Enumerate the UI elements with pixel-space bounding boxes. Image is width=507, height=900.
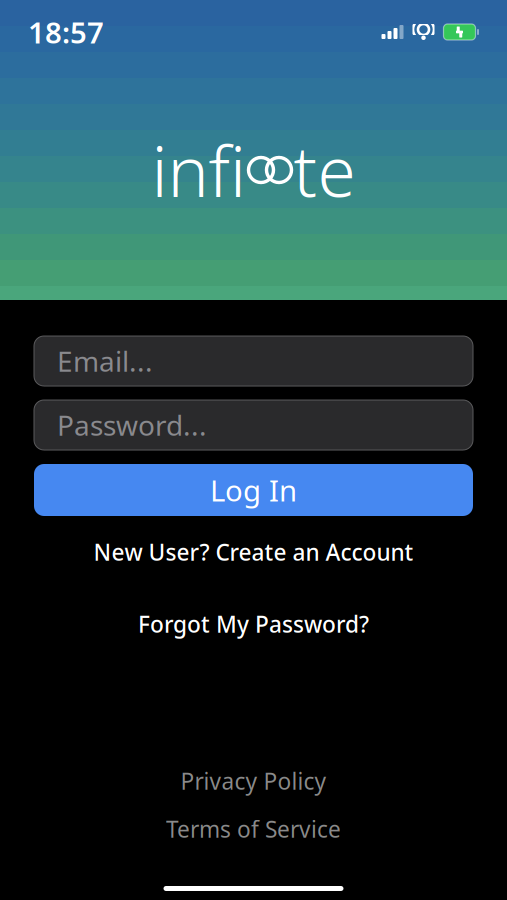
staticText: Email... [57, 342, 153, 380]
staticText: Forgot My Password? [138, 609, 369, 639]
button[interactable]: Terms of Service [34, 816, 473, 842]
button[interactable]: New User? Create an Account [34, 538, 473, 566]
staticText: New User? Create an Account [93, 537, 413, 567]
staticText: Privacy Policy [180, 766, 326, 796]
button[interactable]: Password... [34, 400, 473, 450]
staticText: te [293, 124, 355, 216]
button[interactable]: Email... [34, 336, 473, 386]
staticText: 18:57 [28, 12, 104, 51]
staticText: Terms of Service [166, 814, 341, 844]
staticText: infi [151, 124, 246, 216]
button[interactable]: Forgot My Password? [34, 610, 473, 638]
staticText: Password... [57, 406, 207, 444]
button[interactable]: Privacy Policy [34, 768, 473, 794]
staticText: Log In [210, 470, 297, 509]
button[interactable]: Log In [34, 464, 473, 516]
